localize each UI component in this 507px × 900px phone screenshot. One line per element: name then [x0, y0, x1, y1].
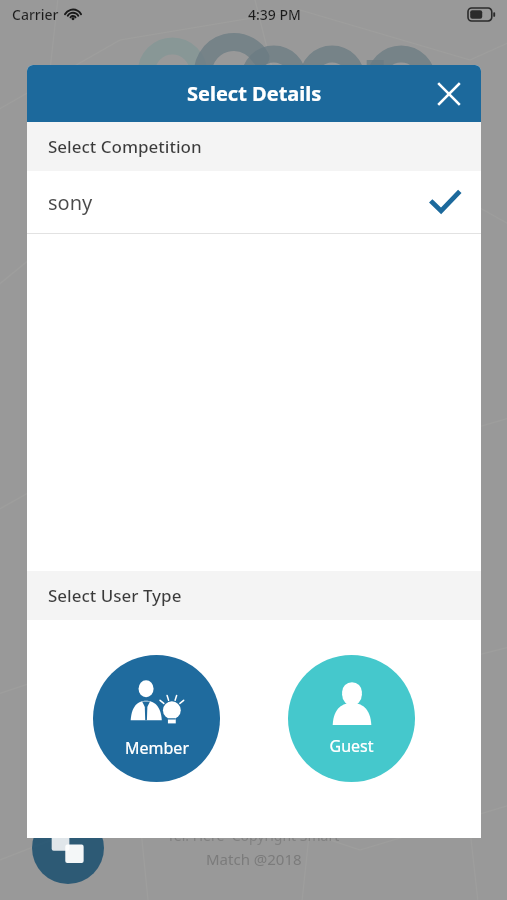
staticText: Select Details [187, 80, 322, 107]
staticText: 4:39 PM [248, 5, 301, 24]
staticText: sony [48, 189, 93, 216]
button[interactable]: Guest [288, 655, 415, 782]
staticText: Member [125, 737, 189, 759]
staticText: Select User Type [48, 584, 182, 607]
staticText: Select Competition [48, 135, 202, 158]
staticText: Carrier [12, 5, 59, 24]
staticText: Guest [329, 735, 374, 757]
staticText: Tel: Here Copyright Smart [167, 826, 340, 845]
button[interactable]: sony [27, 171, 481, 233]
button[interactable]: Member [93, 655, 220, 782]
staticText: Match @2018 [206, 849, 302, 869]
button[interactable]: Translate [32, 812, 104, 884]
button[interactable]: Close [429, 74, 469, 114]
